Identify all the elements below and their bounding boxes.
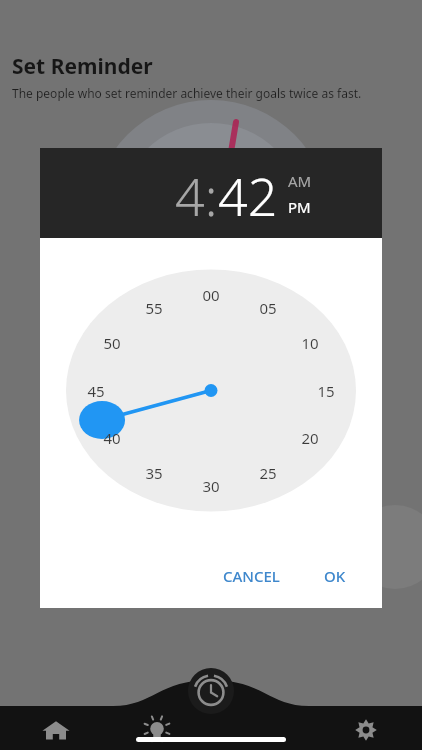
button[interactable]: Settings: [346, 710, 386, 750]
staticText: 00: [194, 285, 228, 305]
staticText: 15: [309, 381, 343, 401]
staticText: 42: [218, 160, 278, 231]
staticText: CANCEL: [223, 566, 280, 586]
staticText: 40: [95, 428, 129, 448]
staticText: 20: [293, 428, 327, 448]
button[interactable]: OK: [314, 558, 356, 594]
staticText: 25: [251, 463, 285, 483]
staticText: OK: [324, 566, 346, 586]
staticText: PM: [288, 197, 311, 217]
staticText: 45: [79, 381, 113, 401]
staticText: Set Reminder: [12, 52, 153, 81]
staticText: 10: [293, 333, 327, 353]
staticText: 05: [251, 298, 285, 318]
staticText: 35: [137, 463, 171, 483]
staticText: 50: [95, 333, 129, 353]
button[interactable]: AM: [288, 171, 312, 191]
staticText: The people who set reminder achieve thei…: [12, 85, 362, 101]
button[interactable]: [40, 238, 382, 543]
button[interactable]: PM: [288, 197, 311, 217]
staticText: AM: [288, 171, 312, 191]
staticText: 55: [137, 298, 171, 318]
staticText: 30: [194, 476, 228, 496]
button[interactable]: Alarm: [188, 668, 234, 714]
staticText: 4:: [175, 160, 218, 231]
button[interactable]: Light: [137, 710, 177, 750]
button[interactable]: Home: [36, 710, 76, 750]
button[interactable]: CANCEL: [213, 558, 290, 594]
